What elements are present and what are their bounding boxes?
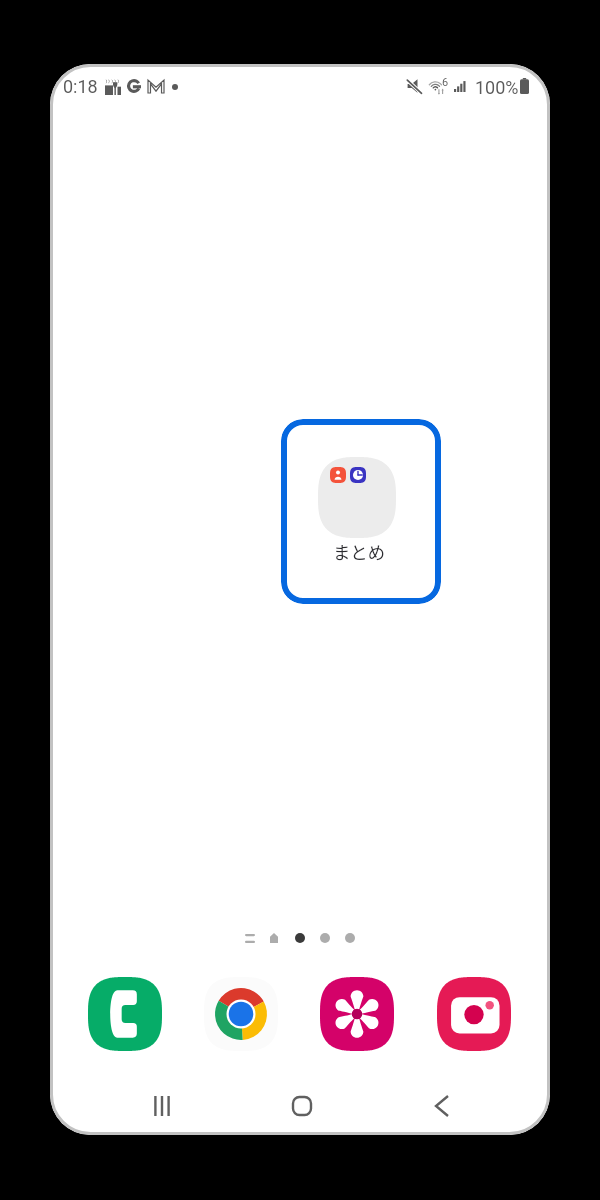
staticText: 6 [442, 76, 449, 89]
button[interactable]: Home [252, 1086, 352, 1126]
button[interactable]: Gallery [320, 977, 394, 1051]
button[interactable]: Page [285, 923, 315, 953]
button[interactable]: Recents [112, 1086, 212, 1126]
button[interactable]: Page [335, 923, 365, 953]
button[interactable]: まとめ [281, 419, 441, 604]
staticText: 100% [475, 77, 519, 98]
button[interactable]: Page [310, 923, 340, 953]
button[interactable]: Camera [437, 977, 511, 1051]
button[interactable]: Phone [88, 977, 162, 1051]
button[interactable]: Back [392, 1086, 492, 1126]
button[interactable]: App list [230, 923, 270, 953]
button[interactable]: Chrome [204, 977, 278, 1051]
staticText: 0:18 [63, 76, 98, 97]
button[interactable]: Home page [254, 923, 294, 953]
staticText: まとめ [281, 539, 439, 564]
